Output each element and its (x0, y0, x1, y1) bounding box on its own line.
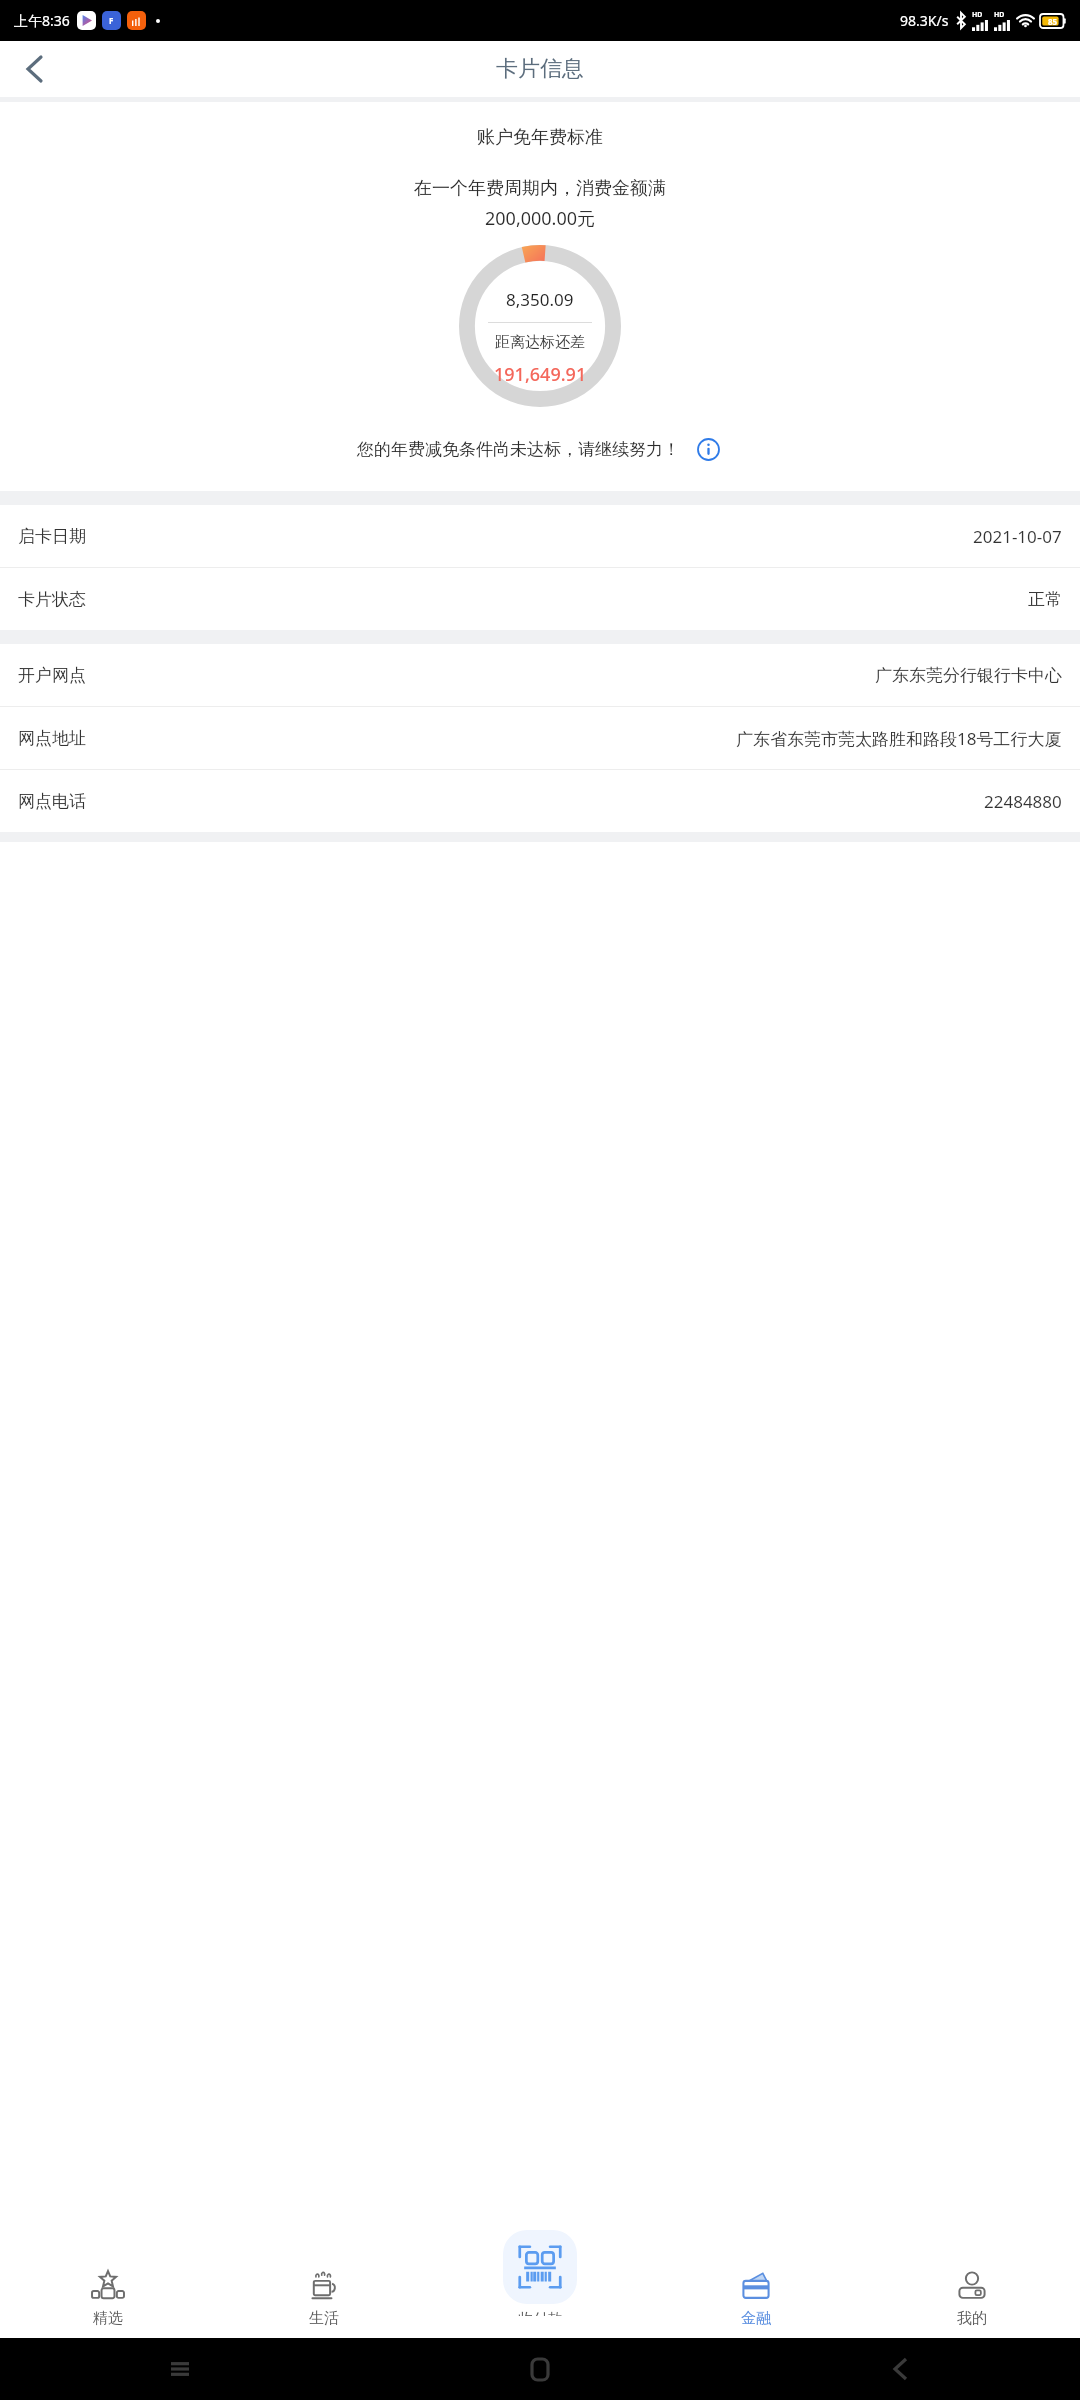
staticText: 98.3K/s (900, 11, 949, 30)
staticText: 启卡日期 (18, 526, 86, 547)
staticText: HD (972, 10, 983, 20)
button[interactable]: 网点电话 (0, 770, 1080, 832)
staticText: 广东东莞分行银行卡中心 (875, 665, 1062, 686)
staticText: 广东省东莞市莞太路胜和路段18号工行大厦 (736, 727, 1062, 750)
staticText: 200,000.00元 (485, 206, 596, 231)
staticText: 我的 (957, 2309, 987, 2328)
button[interactable]: 开户网点 (0, 644, 1080, 706)
staticText: 金融 (741, 2309, 771, 2328)
staticText: 账户免年费标准 (477, 126, 603, 149)
staticText: 生活 (309, 2309, 339, 2328)
button[interactable]: Home (360, 2338, 720, 2400)
staticText: 您的年费减免条件尚未达标，请继续努力！ (357, 439, 680, 460)
button[interactable]: 卡片状态 (0, 568, 1080, 630)
staticText: HD (994, 10, 1005, 20)
staticText: 开户网点 (18, 665, 86, 686)
button[interactable]: 启卡日期 (0, 505, 1080, 567)
staticText: 22484880 (984, 790, 1062, 813)
staticText: 8,350.09 (506, 288, 574, 311)
staticText: 网点地址 (18, 728, 86, 749)
staticText: 85 (1048, 16, 1058, 27)
staticText: 网点电话 (18, 791, 86, 812)
button[interactable]: 生活 (216, 2252, 432, 2338)
staticText: 正常 (1028, 589, 1062, 610)
staticText: F (109, 15, 114, 26)
button[interactable]: 金融 (648, 2252, 864, 2338)
staticText: 在一个年费周期内，消费金额满 (414, 177, 666, 200)
button[interactable]: 精选 (0, 2252, 216, 2338)
button[interactable]: 收付款 (503, 2230, 577, 2316)
staticText: 距离达标还差 (495, 333, 585, 352)
button[interactable]: 我的 (864, 2252, 1080, 2338)
staticText: 收付款 (518, 2310, 563, 2316)
button[interactable]: Back (10, 45, 58, 93)
staticText: 卡片信息 (496, 55, 584, 83)
button[interactable]: Back (720, 2338, 1080, 2400)
button[interactable]: 网点地址 (0, 707, 1080, 769)
other: 收付款 (518, 2245, 562, 2289)
staticText: 上午8:36 (14, 11, 70, 30)
staticText: 卡片状态 (18, 589, 86, 610)
button[interactable]: Recents (0, 2338, 360, 2400)
staticText: 精选 (93, 2309, 123, 2328)
staticText: 191,649.91 (494, 362, 587, 387)
staticText: 2021-10-07 (973, 525, 1062, 548)
button[interactable]: Info (692, 433, 724, 465)
